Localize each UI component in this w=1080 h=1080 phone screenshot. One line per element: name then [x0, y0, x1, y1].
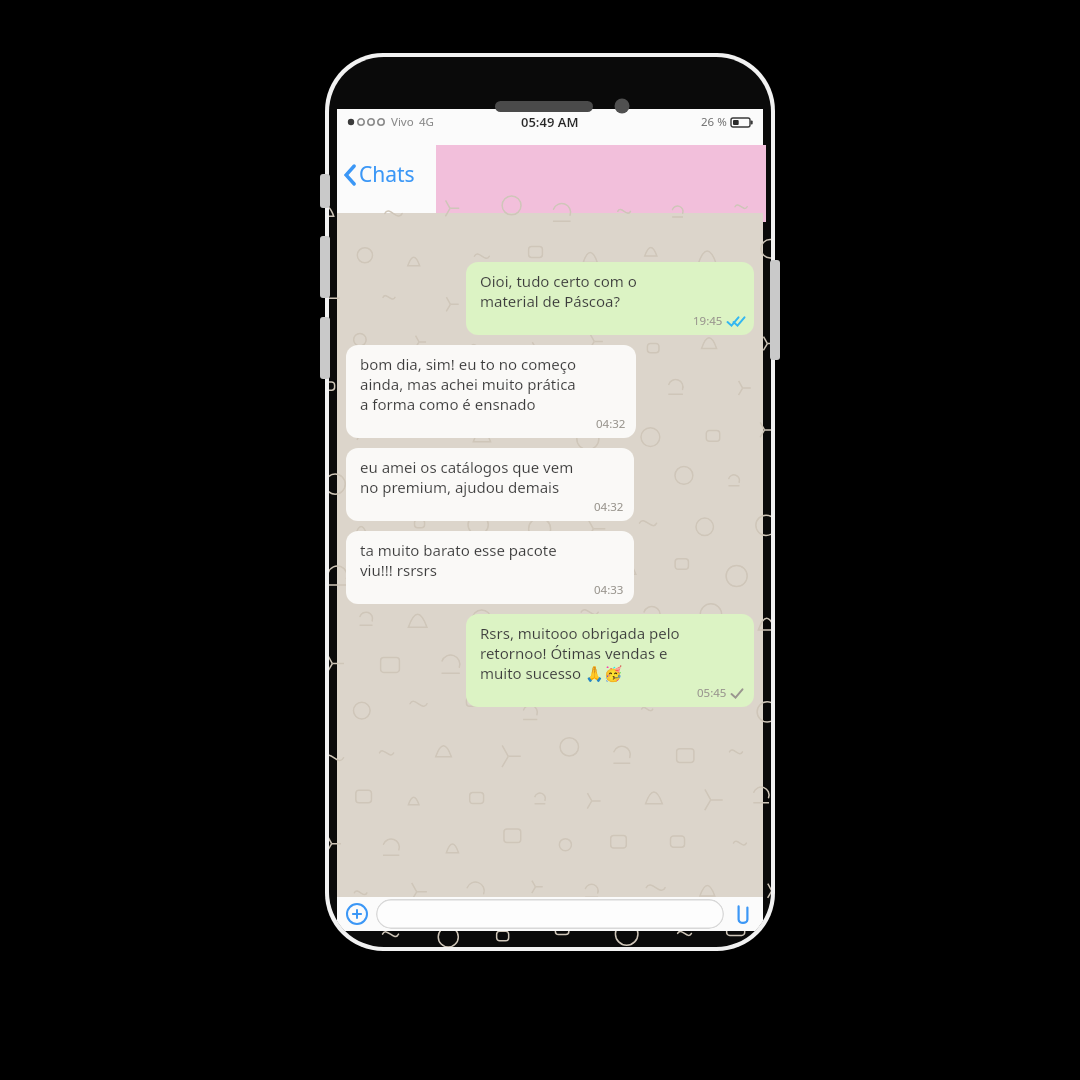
staticText: Vivo — [391, 114, 414, 130]
staticText: ta muito barato esse pacote viu!!! rsrsr… — [360, 540, 557, 580]
staticText: 04:32 — [596, 416, 626, 432]
staticText: 4G — [419, 114, 434, 130]
staticText: Rsrs, muitooo obrigada pelo retornoo! Ót… — [480, 623, 680, 683]
staticText: Chats — [359, 160, 415, 189]
button[interactable]: Oioi, tudo certo com o material de Pásco… — [466, 262, 754, 335]
staticText: 19:45 — [693, 313, 723, 329]
button[interactable]: eu amei os catálogos que vem no premium,… — [346, 448, 634, 521]
button[interactable]: bom dia, sim! eu to no começo ainda, mas… — [346, 345, 636, 438]
button[interactable]: Chats — [341, 160, 417, 189]
button[interactable] — [376, 899, 724, 929]
staticText: 05:45 — [697, 685, 727, 701]
staticText: 04:32 — [594, 499, 624, 515]
staticText: eu amei os catálogos que vem no premium,… — [360, 457, 574, 497]
button[interactable]: Camera — [730, 901, 756, 927]
staticText: 04:33 — [594, 582, 624, 598]
button[interactable]: Rsrs, muitooo obrigada pelo retornoo! Ót… — [466, 614, 754, 707]
button[interactable]: Attach — [344, 901, 370, 927]
staticText: Oioi, tudo certo com o material de Pásco… — [480, 271, 637, 311]
button[interactable]: ta muito barato esse pacote viu!!! rsrsr… — [346, 531, 634, 604]
staticText: bom dia, sim! eu to no começo ainda, mas… — [360, 354, 576, 414]
staticText: 26 % — [701, 114, 727, 130]
staticText: 05:49 AM — [521, 113, 579, 131]
